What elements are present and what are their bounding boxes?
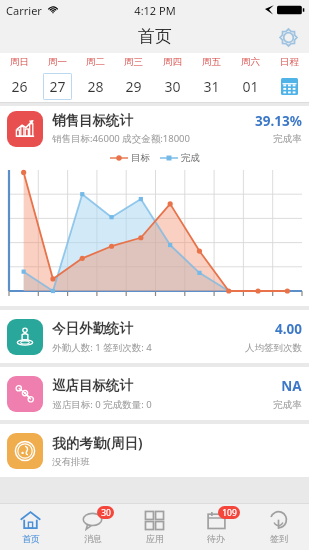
staticText: 29 bbox=[125, 77, 142, 96]
staticText: 30 bbox=[101, 507, 111, 519]
staticText: 巡店目标: 0 完成数量: 0 bbox=[52, 398, 152, 411]
button[interactable]: Settings bbox=[275, 24, 301, 50]
staticText: 完成率 bbox=[273, 133, 302, 145]
button[interactable]: 我的考勤(周日) bbox=[0, 424, 309, 477]
button[interactable]: 首页 bbox=[0, 504, 61, 550]
staticText: 首页 bbox=[22, 533, 40, 544]
staticText: 没有排班 bbox=[52, 456, 90, 468]
button[interactable]: 30 bbox=[61, 504, 123, 550]
staticText: 28 bbox=[87, 77, 104, 96]
staticText: 待办 bbox=[207, 533, 225, 544]
button[interactable]: 巡店目标统计 bbox=[0, 367, 309, 420]
staticText: 应用 bbox=[146, 533, 164, 544]
staticText: 完成 bbox=[181, 152, 200, 164]
button[interactable]: 109 bbox=[185, 504, 247, 550]
staticText: 今日外勤统计 bbox=[52, 320, 133, 337]
staticText: 首页 bbox=[138, 26, 172, 47]
staticText: 周三 bbox=[124, 56, 143, 68]
staticText: 人均签到次数 bbox=[245, 342, 302, 354]
staticText: 签到 bbox=[270, 533, 288, 544]
staticText: 31 bbox=[203, 77, 220, 96]
staticText: 26 bbox=[11, 77, 28, 96]
staticText: 30 bbox=[164, 77, 181, 96]
staticText: 39.13% bbox=[255, 112, 302, 130]
button[interactable]: 31 bbox=[192, 71, 231, 102]
staticText: 我的考勤(周日) bbox=[52, 434, 143, 452]
button[interactable]: 28 bbox=[76, 71, 114, 102]
button[interactable]: 26 bbox=[0, 71, 38, 102]
staticText: 周六 bbox=[241, 56, 260, 68]
staticText: 周日 bbox=[10, 56, 29, 68]
staticText: 周二 bbox=[86, 56, 105, 68]
button[interactable] bbox=[270, 71, 309, 102]
staticText: 周四 bbox=[163, 56, 182, 68]
staticText: 27 bbox=[49, 77, 66, 96]
staticText: 完成率 bbox=[273, 399, 302, 411]
button[interactable]: 今日外勤统计 bbox=[0, 310, 309, 363]
button[interactable]: 应用 bbox=[123, 504, 185, 550]
staticText: Carrier bbox=[6, 3, 42, 18]
staticText: 目标 bbox=[131, 152, 150, 164]
staticText: 4.00 bbox=[275, 320, 302, 338]
staticText: 消息 bbox=[84, 533, 102, 544]
button[interactable]: 01 bbox=[231, 71, 270, 102]
staticText: 周一 bbox=[48, 56, 67, 68]
button[interactable]: 27 bbox=[38, 71, 76, 102]
staticText: 01 bbox=[242, 77, 259, 96]
staticText: 巡店目标统计 bbox=[52, 377, 133, 394]
staticText: NA bbox=[281, 377, 302, 395]
staticText: 4:12 PM bbox=[134, 3, 176, 18]
staticText: 外勤人数: 1 签到次数: 4 bbox=[52, 341, 152, 354]
staticText: 周五 bbox=[202, 56, 221, 68]
button[interactable]: 29 bbox=[114, 71, 153, 102]
staticText: 销售目标:46000 成交金额:18000 bbox=[52, 132, 190, 145]
staticText: 日程 bbox=[280, 56, 299, 68]
button[interactable]: 30 bbox=[153, 71, 192, 102]
button[interactable]: 销售目标统计 bbox=[0, 106, 309, 306]
button[interactable]: 签到 bbox=[247, 504, 309, 550]
staticText: 109 bbox=[222, 507, 237, 519]
staticText: 销售目标统计 bbox=[52, 112, 133, 129]
